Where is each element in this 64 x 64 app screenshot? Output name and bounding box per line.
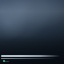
- button[interactable]: Status indicator: [3, 60, 5, 62]
- button[interactable]: [1, 55, 60, 57]
- button[interactable]: [1, 58, 56, 59]
